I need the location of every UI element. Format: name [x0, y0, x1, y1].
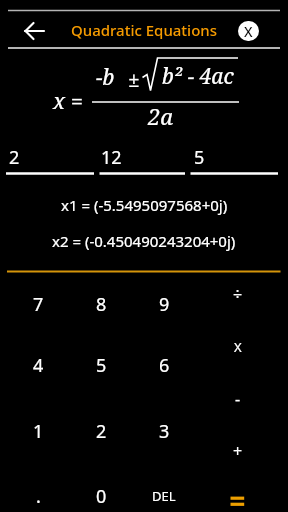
staticText: 7 — [33, 292, 44, 317]
staticText: 2a — [148, 101, 174, 131]
staticText: x = — [53, 85, 84, 115]
button[interactable]: 0 — [75, 474, 127, 512]
staticText: DEL — [152, 487, 176, 505]
staticText: 6 — [159, 353, 170, 378]
staticText: x2 = (-0.450490243204+0j) — [52, 231, 236, 251]
staticText: x1 = (-5.5495097568+0j) — [61, 195, 228, 215]
staticText: X — [244, 22, 253, 41]
button[interactable] — [214, 482, 262, 512]
staticText: 1 — [33, 419, 44, 444]
staticText: 2 — [96, 419, 107, 444]
button[interactable]: 1 — [12, 409, 64, 453]
staticText: 5 — [96, 353, 107, 378]
staticText: X — [234, 338, 242, 356]
button[interactable]: ÷ — [214, 274, 262, 314]
button[interactable]: 3 — [138, 409, 190, 453]
staticText: 9 — [159, 292, 170, 317]
staticText: 8 — [96, 292, 107, 317]
button[interactable]: + — [214, 431, 262, 471]
button[interactable]: 2 — [75, 409, 127, 453]
button[interactable]: 5 — [191, 145, 207, 167]
staticText: ÷ — [233, 283, 243, 305]
staticText: + — [233, 440, 243, 462]
button[interactable]: 8 — [75, 282, 127, 326]
staticText: 12 — [101, 145, 122, 167]
button[interactable]: X — [214, 327, 262, 367]
button[interactable]: Quadratic Equations — [0, 12, 288, 48]
staticText: 3 — [159, 419, 170, 444]
button[interactable]: 9 — [138, 282, 190, 326]
button[interactable]: . — [12, 474, 64, 512]
button[interactable]: 7 — [12, 282, 64, 326]
button[interactable]: DEL — [138, 474, 190, 512]
button[interactable]: 5 — [75, 343, 127, 387]
button[interactable]: - — [214, 379, 262, 419]
staticText: 2 — [9, 145, 20, 167]
staticText: Quadratic Equations — [71, 20, 218, 40]
button[interactable]: 6 — [138, 343, 190, 387]
staticText: - — [235, 388, 241, 410]
button[interactable]: 2 — [6, 145, 22, 167]
staticText: 5 — [194, 145, 205, 167]
button[interactable]: 12 — [98, 145, 124, 167]
staticText: 0 — [96, 484, 107, 509]
staticText: . — [36, 484, 41, 509]
button[interactable]: X — [238, 21, 259, 41]
staticText: −b — [96, 63, 115, 92]
staticText: 4 — [33, 353, 44, 378]
staticText: b² − 4ac — [162, 62, 234, 91]
staticText: ± — [128, 65, 140, 94]
button[interactable]: 4 — [12, 343, 64, 387]
